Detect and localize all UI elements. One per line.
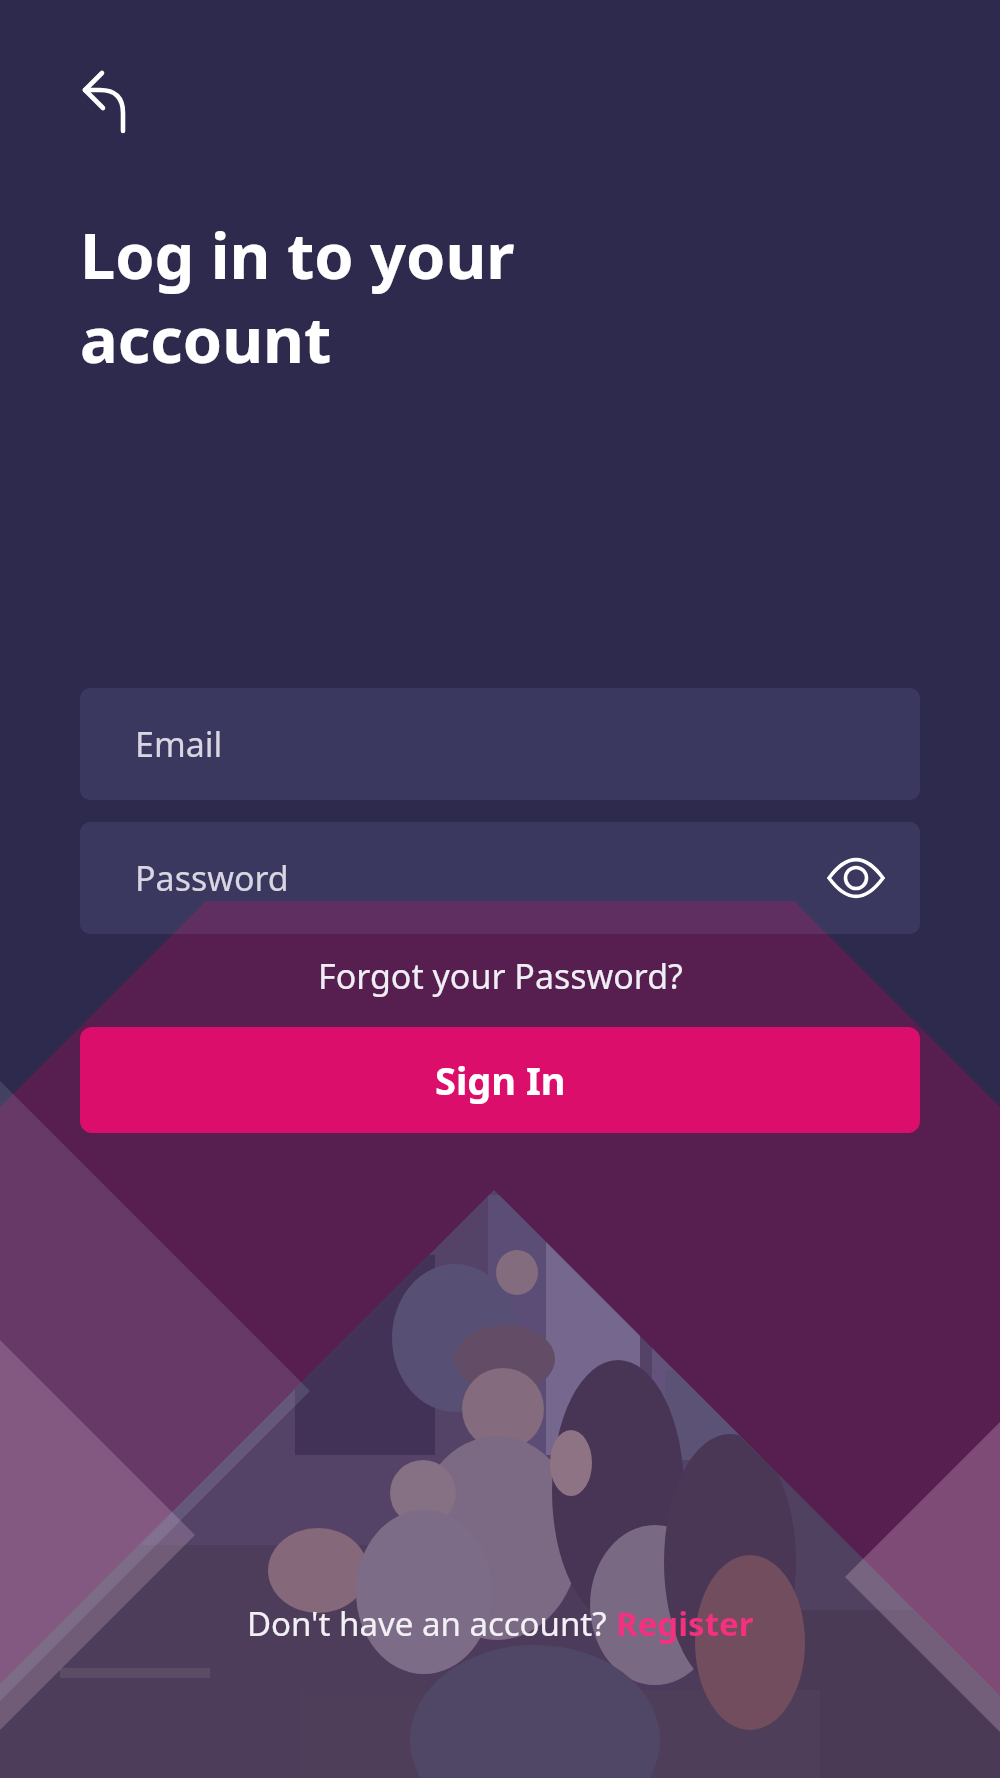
staticText: Email bbox=[135, 721, 223, 767]
button[interactable]: Forgot your Password? bbox=[318, 953, 683, 999]
staticText: Log in to your account bbox=[80, 212, 515, 381]
button[interactable]: Sign In bbox=[80, 1027, 920, 1133]
staticText: Don't have an account? bbox=[247, 1601, 616, 1646]
staticText: Forgot your Password? bbox=[318, 953, 683, 999]
button[interactable]: Register bbox=[616, 1601, 754, 1646]
button[interactable]: Email bbox=[80, 688, 920, 800]
staticText: Sign In bbox=[435, 1054, 566, 1106]
staticText: Register bbox=[616, 1601, 754, 1646]
button[interactable] bbox=[66, 48, 142, 152]
button[interactable]: Password bbox=[80, 822, 920, 934]
staticText: Password bbox=[135, 855, 289, 901]
